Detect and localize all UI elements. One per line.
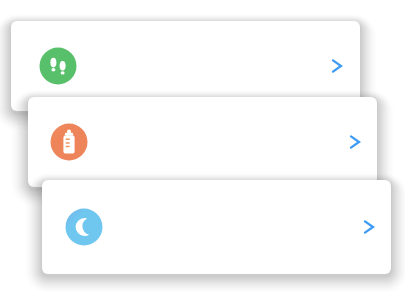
button[interactable]: Sleep xyxy=(42,180,391,274)
button[interactable]: Activity xyxy=(11,21,360,111)
button[interactable]: Feeding xyxy=(28,97,377,187)
